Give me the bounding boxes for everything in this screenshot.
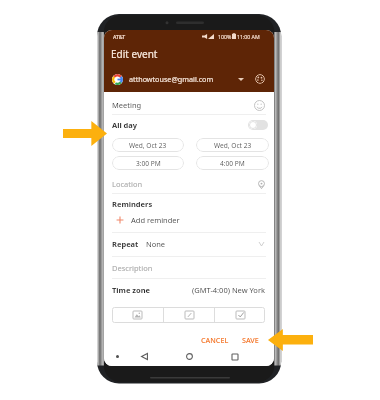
button[interactable]: Wed, Oct 23	[196, 138, 269, 152]
staticText: AT&T	[113, 33, 126, 40]
button[interactable]: Description	[104, 259, 274, 277]
staticText: 11:00 AM	[237, 33, 260, 40]
button[interactable]: CANCEL	[197, 333, 233, 347]
button[interactable]: Back	[137, 349, 152, 364]
button[interactable]: All day	[104, 115, 274, 135]
button[interactable]: Add image	[112, 307, 163, 323]
button[interactable]: Repeat	[104, 235, 274, 253]
other: Pointer to Save button	[268, 329, 313, 351]
staticText: Location	[112, 179, 143, 189]
staticText: All day	[112, 120, 138, 130]
button[interactable]: Meeting	[104, 95, 274, 115]
button[interactable]: SAVE	[238, 333, 263, 347]
button[interactable]: Add note	[164, 307, 214, 323]
staticText: SAVE	[242, 335, 259, 345]
other: Pointer to All day row	[63, 121, 107, 146]
staticText: Repeat	[112, 239, 139, 249]
button[interactable]: All day toggle	[248, 120, 268, 130]
staticText: Meeting	[112, 100, 142, 110]
button[interactable]: Location	[104, 175, 274, 193]
button[interactable]: Home	[182, 349, 197, 364]
staticText: atthowtouse@gmail.com	[129, 74, 214, 84]
staticText: CANCEL	[201, 335, 229, 345]
button[interactable]: Add checklist	[215, 307, 265, 323]
staticText: Time zone	[112, 285, 151, 295]
button[interactable]: Recents	[227, 349, 242, 364]
button[interactable]: Add reminder	[104, 212, 274, 228]
button[interactable]: Time zone	[104, 281, 274, 299]
button[interactable]: Wed, Oct 23	[112, 138, 184, 152]
staticText: Wed, Oct 23	[129, 141, 167, 150]
staticText: Reminders	[112, 199, 153, 209]
staticText: Description	[112, 263, 153, 273]
staticText: 3:00 PM	[136, 159, 161, 168]
button[interactable]: 4:00 PM	[196, 156, 269, 170]
staticText: 4:00 PM	[220, 159, 245, 168]
staticText: None	[146, 239, 166, 249]
button[interactable]: atthowtouse@gmail.com	[104, 66, 274, 92]
staticText: Wed, Oct 23	[214, 141, 252, 150]
button[interactable]: Event colour	[255, 74, 265, 84]
staticText: Add reminder	[131, 215, 180, 225]
button[interactable]: 3:00 PM	[112, 156, 184, 170]
staticText: (GMT-4:00) New York	[192, 285, 266, 295]
staticText: 100%	[218, 33, 232, 40]
staticText: Edit event	[111, 47, 158, 61]
